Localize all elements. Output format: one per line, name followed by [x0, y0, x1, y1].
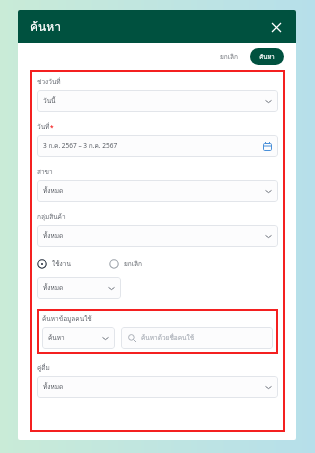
- staticText: ค้นหา: [30, 17, 268, 36]
- button[interactable]: Close: [268, 19, 284, 35]
- staticText: ค้นหาข้อมูลคนใช้: [42, 314, 92, 324]
- staticText: ทั้งหมด: [43, 283, 108, 293]
- button[interactable]: ค้นหา: [42, 327, 115, 349]
- staticText: สาขา: [37, 167, 53, 177]
- staticText: กลุ่มสินค้า: [37, 212, 66, 222]
- staticText: ทั้งหมด: [43, 231, 265, 241]
- staticText: วันนี้: [43, 96, 265, 106]
- button[interactable]: ยกเลิก: [109, 259, 142, 269]
- staticText: ค้นหา: [259, 52, 275, 62]
- staticText: 3 ก.ค. 2567 – 3 ก.ค. 2567: [43, 141, 263, 151]
- button[interactable]: ใช้งาน: [37, 259, 71, 269]
- staticText: ทั้งหมด: [43, 382, 265, 392]
- staticText: ทั้งหมด: [43, 186, 265, 196]
- button[interactable]: 3 ก.ค. 2567 – 3 ก.ค. 2567: [37, 135, 278, 157]
- button[interactable]: ทั้งหมด: [37, 180, 278, 202]
- button[interactable]: ทั้งหมด: [37, 225, 278, 247]
- staticText: ใช้งาน: [52, 259, 71, 269]
- staticText: คู่ดื่ม: [37, 363, 50, 373]
- button[interactable]: ค้นหา: [250, 48, 284, 65]
- staticText: ยกเลิก: [124, 259, 142, 269]
- button[interactable]: ค้นหาด้วยชื่อคนใช้: [121, 327, 273, 349]
- button[interactable]: ทั้งหมด: [37, 277, 121, 299]
- other: Pick date: [263, 142, 272, 151]
- button[interactable]: วันนี้: [37, 90, 278, 112]
- staticText: ค้นหาด้วยชื่อคนใช้: [141, 333, 195, 343]
- staticText: ยกเลิก: [220, 52, 238, 62]
- button[interactable]: ทั้งหมด: [37, 376, 278, 398]
- staticText: วันที่: [37, 122, 50, 132]
- staticText: ช่วงวันที่: [37, 77, 61, 87]
- button[interactable]: ยกเลิก: [214, 48, 244, 66]
- staticText: ค้นหา: [48, 333, 102, 343]
- staticText: *: [50, 123, 54, 132]
